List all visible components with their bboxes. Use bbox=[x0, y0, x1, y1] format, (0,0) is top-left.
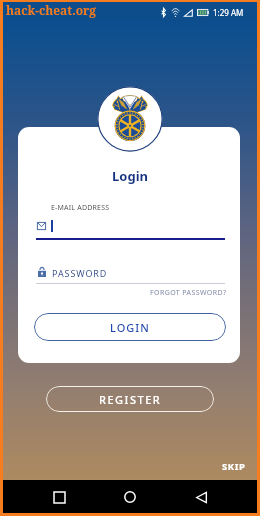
button[interactable]: REGISTER bbox=[46, 386, 214, 412]
staticText: E-MAIL ADDRESS bbox=[51, 203, 110, 213]
button[interactable]: Recents bbox=[44, 482, 74, 512]
staticText: FORGOT PASSWORD? bbox=[150, 288, 227, 298]
button[interactable]: Back bbox=[186, 482, 216, 512]
button[interactable]: SKIP bbox=[222, 460, 246, 473]
staticText: 1:29 AM bbox=[213, 7, 244, 18]
staticText: Login bbox=[3, 167, 257, 185]
staticText: LOGIN bbox=[110, 320, 150, 335]
button[interactable]: FORGOT PASSWORD? bbox=[150, 288, 227, 298]
staticText: hack-cheat.org bbox=[6, 2, 97, 18]
staticText: REGISTER bbox=[99, 392, 162, 407]
button[interactable]: LOGIN bbox=[34, 313, 226, 341]
staticText: SKIP bbox=[222, 460, 246, 473]
button[interactable]: Home bbox=[115, 482, 145, 512]
staticText: PASSWORD bbox=[52, 267, 108, 279]
